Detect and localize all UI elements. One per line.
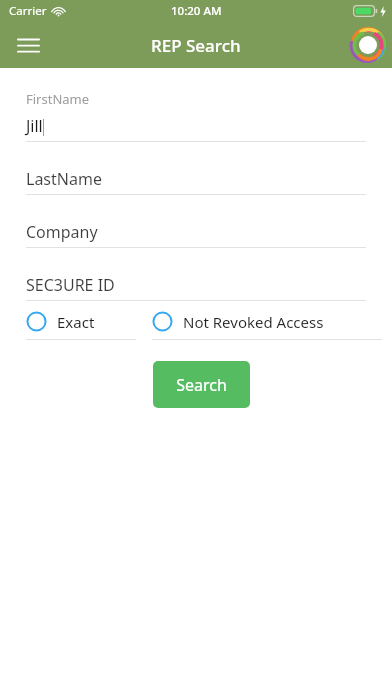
button[interactable]: Not Revoked Access — [152, 311, 382, 340]
staticText: LastName — [26, 168, 102, 190]
button[interactable]: SEC3URE ID — [26, 274, 366, 301]
button[interactable]: Profile — [348, 25, 388, 65]
staticText: FirstName — [26, 90, 90, 108]
staticText: Carrier — [9, 3, 47, 19]
staticText: Company — [26, 221, 98, 243]
staticText: Search — [176, 374, 227, 396]
button[interactable]: FirstName — [26, 90, 366, 142]
staticText: 10:20 AM — [171, 3, 222, 19]
button[interactable]: Search — [153, 361, 250, 408]
staticText: REP Search — [151, 34, 241, 57]
staticText: Jill — [26, 115, 43, 137]
button[interactable]: LastName — [26, 168, 366, 195]
staticText: SEC3URE ID — [26, 274, 115, 296]
staticText: Not Revoked Access — [183, 312, 324, 332]
button[interactable]: Exact — [26, 311, 136, 340]
button[interactable]: Open navigation menu — [8, 25, 48, 65]
staticText: Exact — [57, 312, 95, 332]
button[interactable]: Company — [26, 221, 366, 248]
